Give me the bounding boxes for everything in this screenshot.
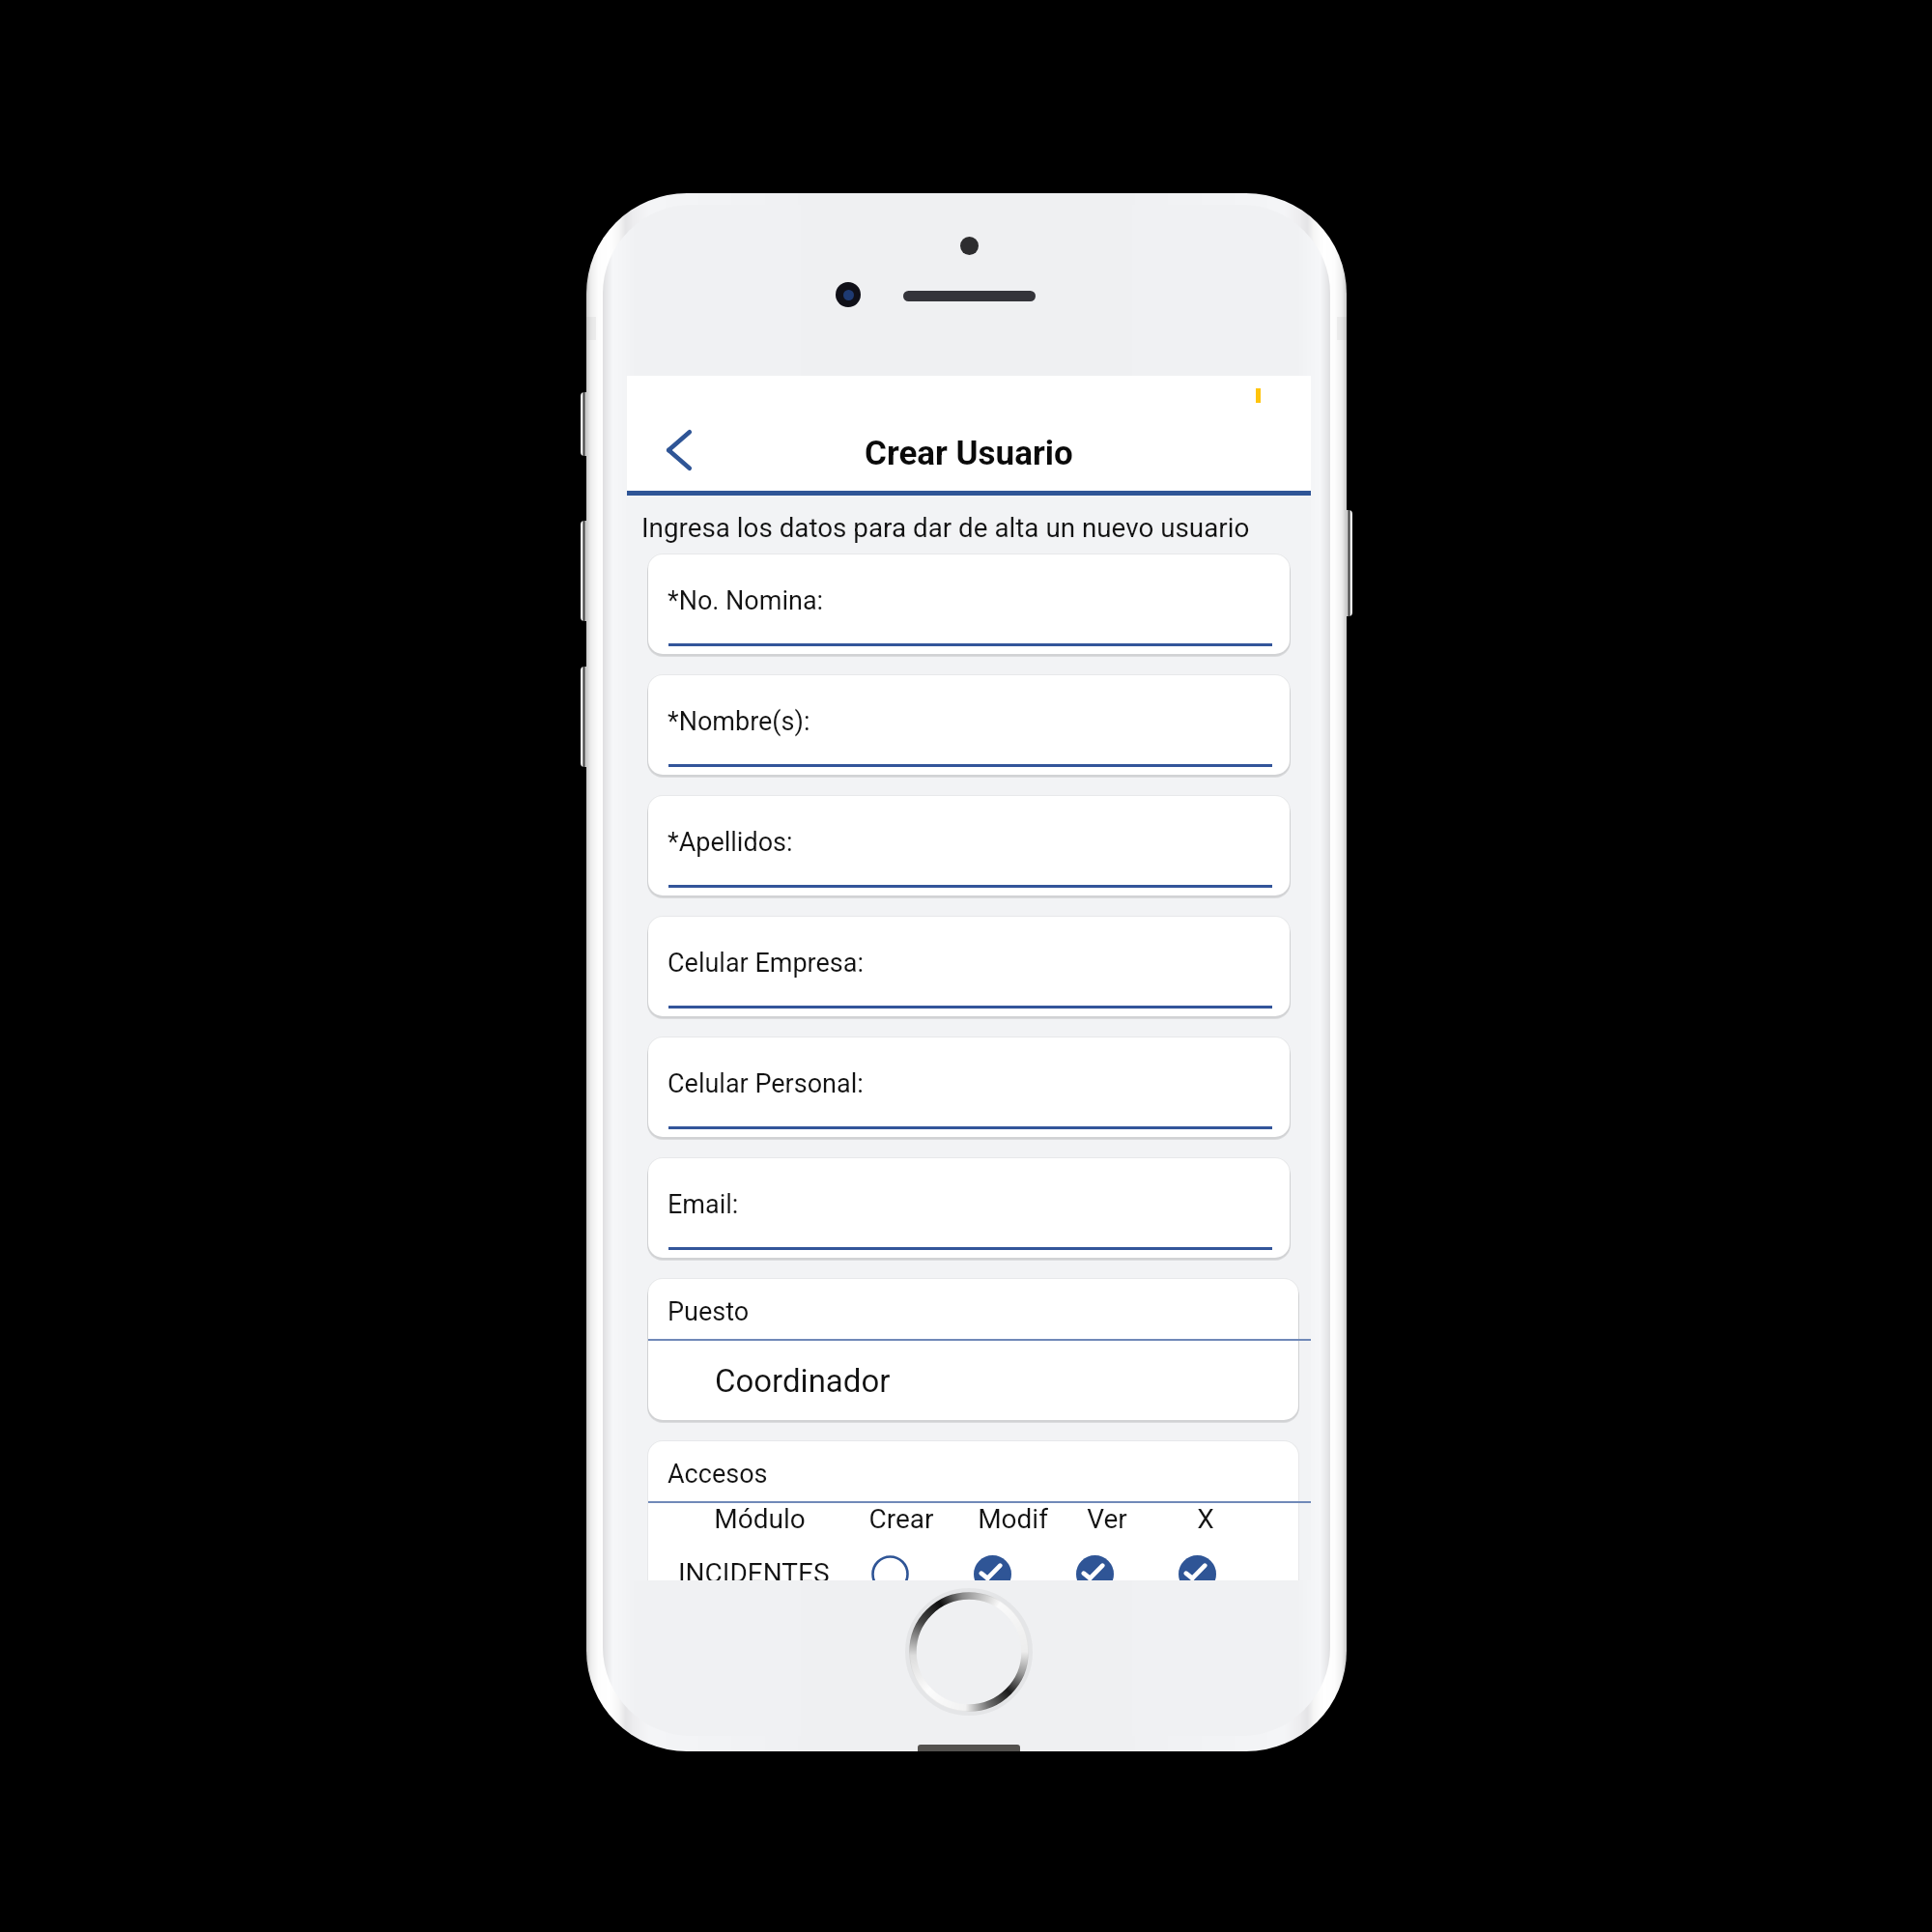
button[interactable]: Puesto xyxy=(648,1279,1298,1420)
staticText: X xyxy=(1197,1503,1214,1535)
staticText: *Apellidos: xyxy=(668,827,793,858)
staticText: Email: xyxy=(668,1189,739,1220)
button[interactable]: Back xyxy=(648,414,708,474)
staticText: Crear Usuario xyxy=(865,434,1073,473)
button[interactable]: Eliminar INCIDENTES xyxy=(1149,1550,1245,1580)
staticText: Celular Empresa: xyxy=(668,948,865,979)
staticText: Celular Personal: xyxy=(668,1068,864,1099)
button[interactable]: *No. Nomina: xyxy=(648,554,1290,654)
button[interactable]: *Nombre(s): xyxy=(648,675,1290,775)
button[interactable]: Email: xyxy=(648,1158,1290,1258)
button[interactable]: Crear INCIDENTES xyxy=(841,1550,938,1580)
button[interactable]: *Apellidos: xyxy=(648,796,1290,895)
button[interactable]: Modificar INCIDENTES xyxy=(944,1550,1040,1580)
staticText: Accesos xyxy=(668,1459,768,1490)
staticText: *No. Nomina: xyxy=(668,585,824,616)
staticText: INCIDENTES xyxy=(678,1557,830,1580)
staticText: Ingresa los datos para dar de alta un nu… xyxy=(641,512,1250,544)
staticText: *Nombre(s): xyxy=(668,706,810,737)
staticText: Ver xyxy=(1087,1503,1127,1535)
staticText: Coordinador xyxy=(715,1362,891,1400)
staticText: Módulo xyxy=(714,1503,806,1535)
staticText: Puesto xyxy=(668,1296,750,1327)
staticText: Modif xyxy=(978,1503,1048,1535)
button[interactable]: Celular Personal: xyxy=(648,1037,1290,1137)
staticText: Crear xyxy=(868,1503,934,1535)
button[interactable]: Ver INCIDENTES xyxy=(1046,1550,1143,1580)
button[interactable]: Celular Empresa: xyxy=(648,917,1290,1016)
